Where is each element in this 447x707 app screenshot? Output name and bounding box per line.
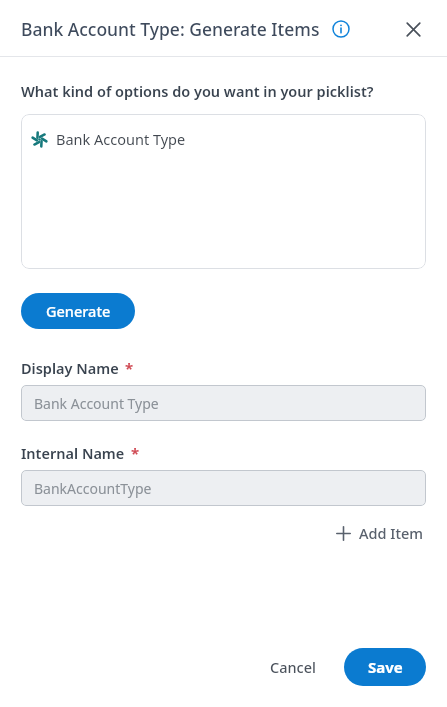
button[interactable]: Close xyxy=(395,11,431,47)
staticText: Generate xyxy=(46,301,111,321)
staticText: * xyxy=(131,443,140,463)
button[interactable]: BankAccountType xyxy=(21,470,426,506)
staticText: Bank Account Type xyxy=(34,394,159,413)
staticText: Display Name xyxy=(21,358,119,378)
button[interactable]: Cancel xyxy=(256,648,330,686)
button[interactable]: Information xyxy=(329,17,353,41)
staticText: Bank Account Type xyxy=(56,129,186,149)
button[interactable]: Generate xyxy=(21,293,135,329)
button[interactable]: Add Item xyxy=(333,519,426,547)
staticText: Bank Account Type: Generate Items xyxy=(21,17,320,41)
button[interactable]: Bank Account Type xyxy=(21,114,426,269)
staticText: Internal Name xyxy=(21,443,125,463)
staticText: Save xyxy=(368,657,403,677)
staticText: Add Item xyxy=(359,523,423,543)
button[interactable]: Save xyxy=(344,648,426,686)
staticText: * xyxy=(125,358,134,378)
staticText: What kind of options do you want in your… xyxy=(21,81,374,101)
staticText: Cancel xyxy=(270,657,316,677)
staticText: BankAccountType xyxy=(34,479,152,498)
button[interactable]: Bank Account Type xyxy=(21,385,426,421)
